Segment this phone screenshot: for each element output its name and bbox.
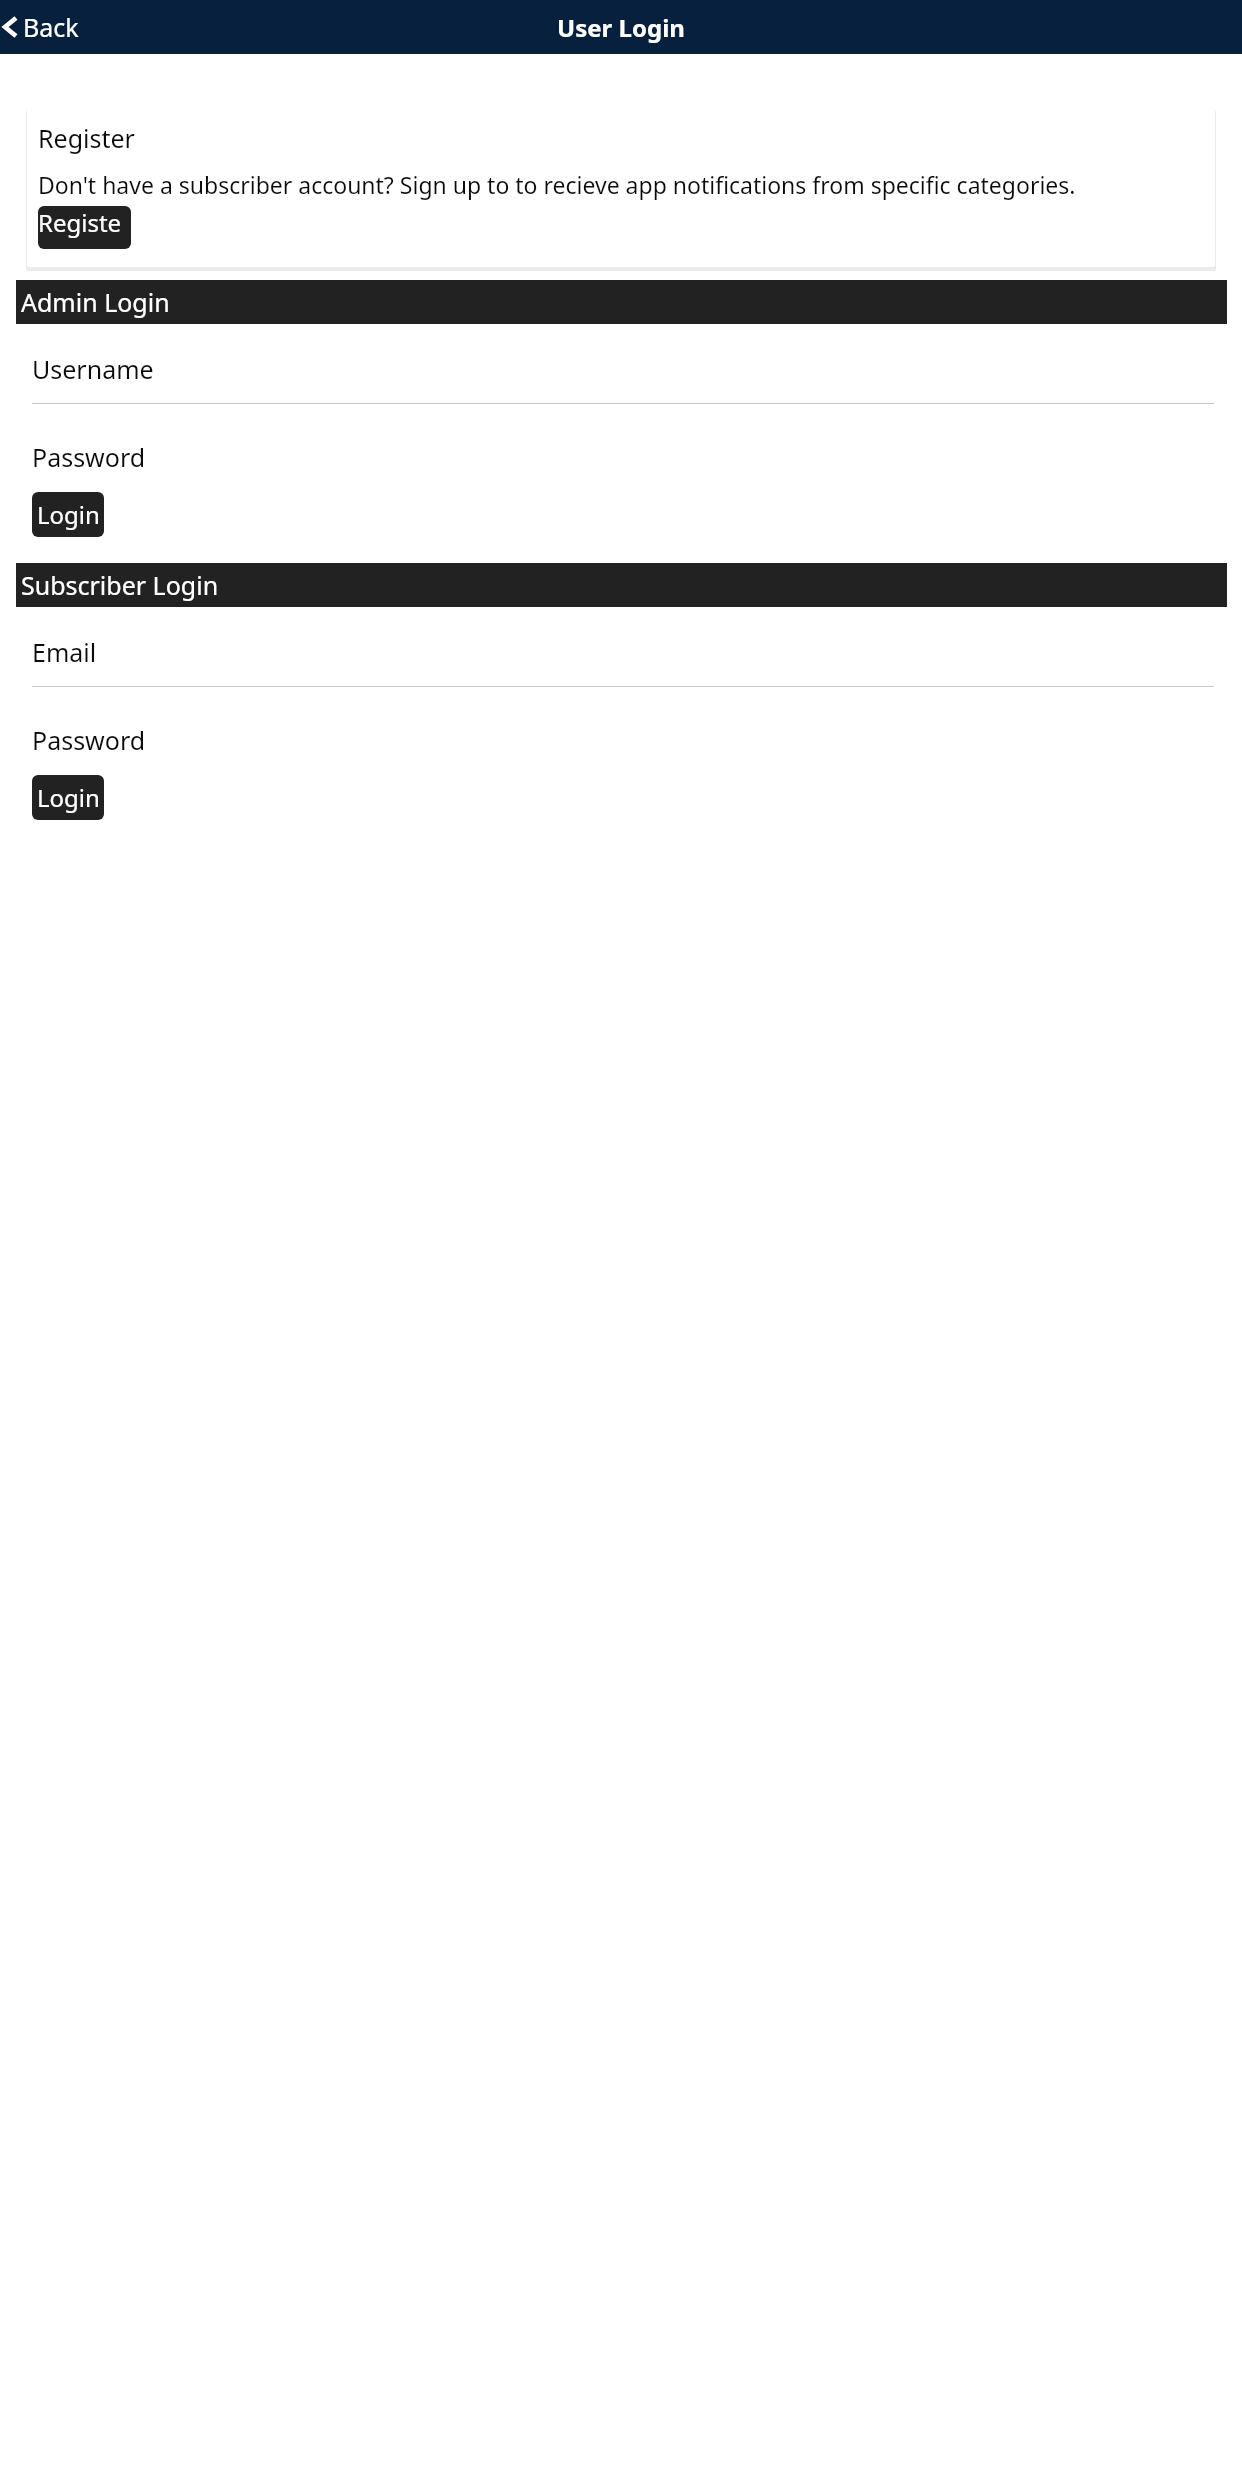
staticText: Login — [37, 781, 100, 814]
staticText: Username — [32, 352, 154, 386]
staticText: Subscriber Login — [21, 568, 219, 602]
button[interactable]: Subscriber Login — [16, 563, 1227, 607]
staticText: Password — [32, 440, 146, 474]
button[interactable]: Admin Login — [16, 280, 1227, 324]
button[interactable]: Register — [38, 206, 131, 249]
staticText: Password — [32, 723, 146, 757]
button[interactable]: Back — [0, 0, 89, 54]
button[interactable]: Register — [27, 109, 1215, 267]
staticText: Don't have a subscriber account? Sign up… — [38, 169, 1076, 200]
button[interactable]: Login — [32, 492, 104, 537]
staticText: Email — [32, 635, 97, 669]
staticText: Admin Login — [21, 285, 170, 319]
staticText: Login — [37, 498, 100, 531]
staticText: User Login — [557, 11, 685, 44]
staticText: Register — [38, 121, 135, 155]
staticText: Back — [23, 10, 79, 44]
button[interactable]: Login — [32, 775, 104, 820]
staticText: Register — [38, 206, 131, 249]
